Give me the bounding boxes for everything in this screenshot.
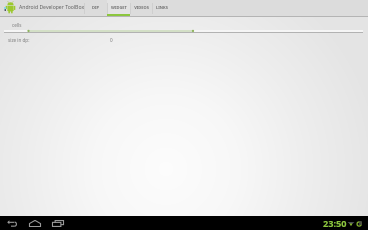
button[interactable]: LINKS bbox=[152, 0, 172, 16]
button[interactable]: Recents bbox=[48, 216, 67, 230]
button[interactable]: Back bbox=[3, 216, 21, 230]
button[interactable]: Status bbox=[318, 216, 368, 230]
button[interactable]: DIP bbox=[84, 0, 107, 16]
staticText: VIDEOS bbox=[134, 5, 149, 10]
staticText: 23:50 bbox=[323, 217, 347, 230]
button[interactable]: Home bbox=[25, 216, 44, 230]
staticText: LINKS bbox=[156, 5, 168, 10]
button[interactable]: WIDGET bbox=[107, 0, 130, 16]
staticText: size in dp: bbox=[8, 37, 30, 43]
staticText: Android Developer ToolBox bbox=[19, 4, 85, 11]
staticText: cells bbox=[12, 22, 22, 28]
staticText: 0 bbox=[110, 37, 113, 43]
staticText: DIP bbox=[92, 5, 99, 10]
button[interactable]: VIDEOS bbox=[130, 0, 152, 16]
staticText: WIDGET bbox=[111, 5, 127, 10]
